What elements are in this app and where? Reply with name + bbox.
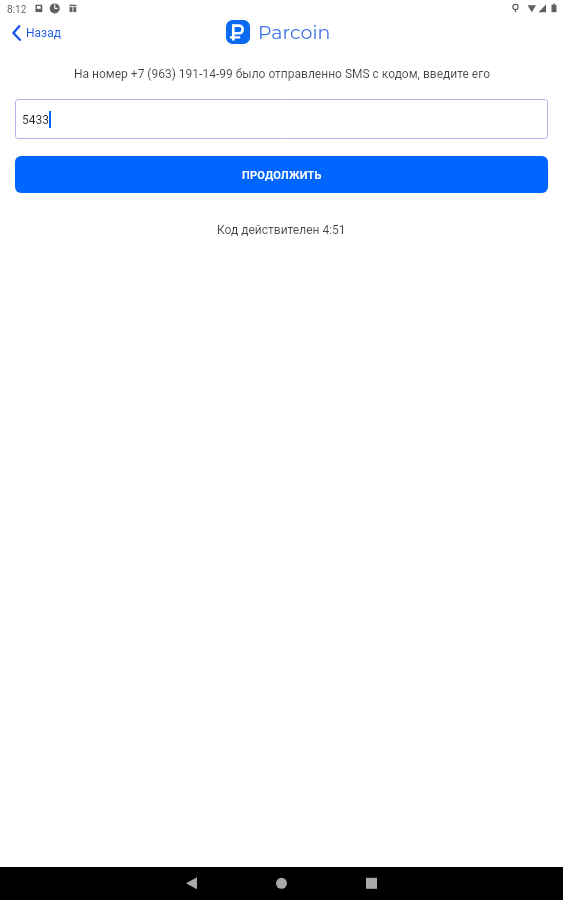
button[interactable]: Back (170, 867, 214, 900)
staticText: ПРОДОЛЖИТЬ (242, 169, 322, 182)
staticText: 8:12 (7, 4, 27, 16)
button[interactable]: ПРОДОЛЖИТЬ (15, 156, 548, 193)
button[interactable]: 5433 (15, 99, 548, 139)
staticText: На номер +7 (963) 191-14-99 было отправл… (74, 67, 490, 81)
staticText: Parcoin (258, 21, 331, 44)
button[interactable]: Назад (0, 17, 69, 49)
staticText: 5433 (22, 113, 49, 127)
button[interactable]: Home (259, 867, 304, 900)
button[interactable]: Recent apps (349, 867, 394, 900)
staticText: Назад (26, 26, 61, 40)
staticText: Код действителен 4:51 (217, 223, 346, 237)
